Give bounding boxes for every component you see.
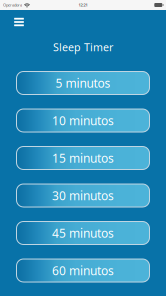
staticText: 60 minutos [52, 262, 114, 278]
staticText: Operadora [3, 2, 22, 8]
button[interactable]: Menu [8, 10, 30, 34]
button[interactable]: 5 minutos [16, 71, 150, 95]
button[interactable]: 10 minutos [16, 108, 150, 132]
staticText: 45 minutos [52, 225, 114, 241]
staticText: 30 minutos [52, 187, 114, 203]
staticText: 15 minutos [52, 150, 114, 166]
button[interactable]: 30 minutos [16, 183, 150, 207]
button[interactable]: 60 minutos [16, 258, 150, 282]
staticText: 5 minutos [55, 75, 110, 91]
button[interactable]: 15 minutos [16, 146, 150, 170]
button[interactable]: 45 minutos [16, 221, 150, 245]
staticText: 12:21 [78, 2, 87, 8]
staticText: Sleep Timer [53, 40, 113, 54]
staticText: 10 minutos [52, 112, 114, 128]
